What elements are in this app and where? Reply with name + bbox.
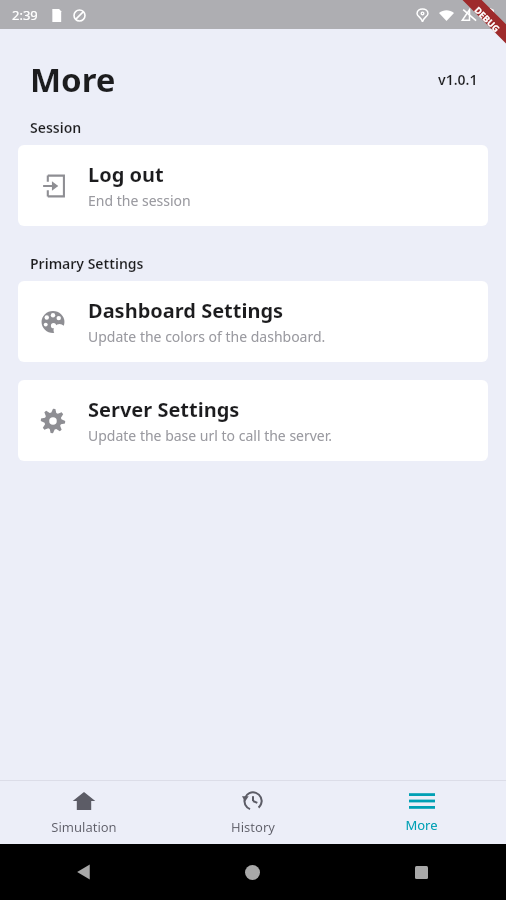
button[interactable]: History [168,781,337,844]
staticText: Update the base url to call the server. [88,426,333,445]
staticText: More [405,816,438,834]
staticText: History [231,818,275,836]
button[interactable]: More [337,781,506,844]
staticText: Dashboard Settings [88,297,284,324]
button[interactable]: Dashboard Settings [18,281,488,362]
staticText: Update the colors of the dashboard. [88,327,326,346]
button[interactable]: Simulation [0,781,168,844]
button[interactable]: Log out [18,145,488,226]
staticText: End the session [88,191,191,210]
staticText: Log out [88,161,164,188]
staticText: DEBUG [472,4,503,34]
staticText: Primary Settings [30,254,144,273]
staticText: 2:39 [12,6,38,24]
staticText: More [30,57,116,102]
staticText: Simulation [51,818,117,836]
staticText: v1.0.1 [438,70,478,89]
staticText: Server Settings [88,396,240,423]
staticText: Session [30,118,82,137]
button[interactable]: Server Settings [18,380,488,461]
